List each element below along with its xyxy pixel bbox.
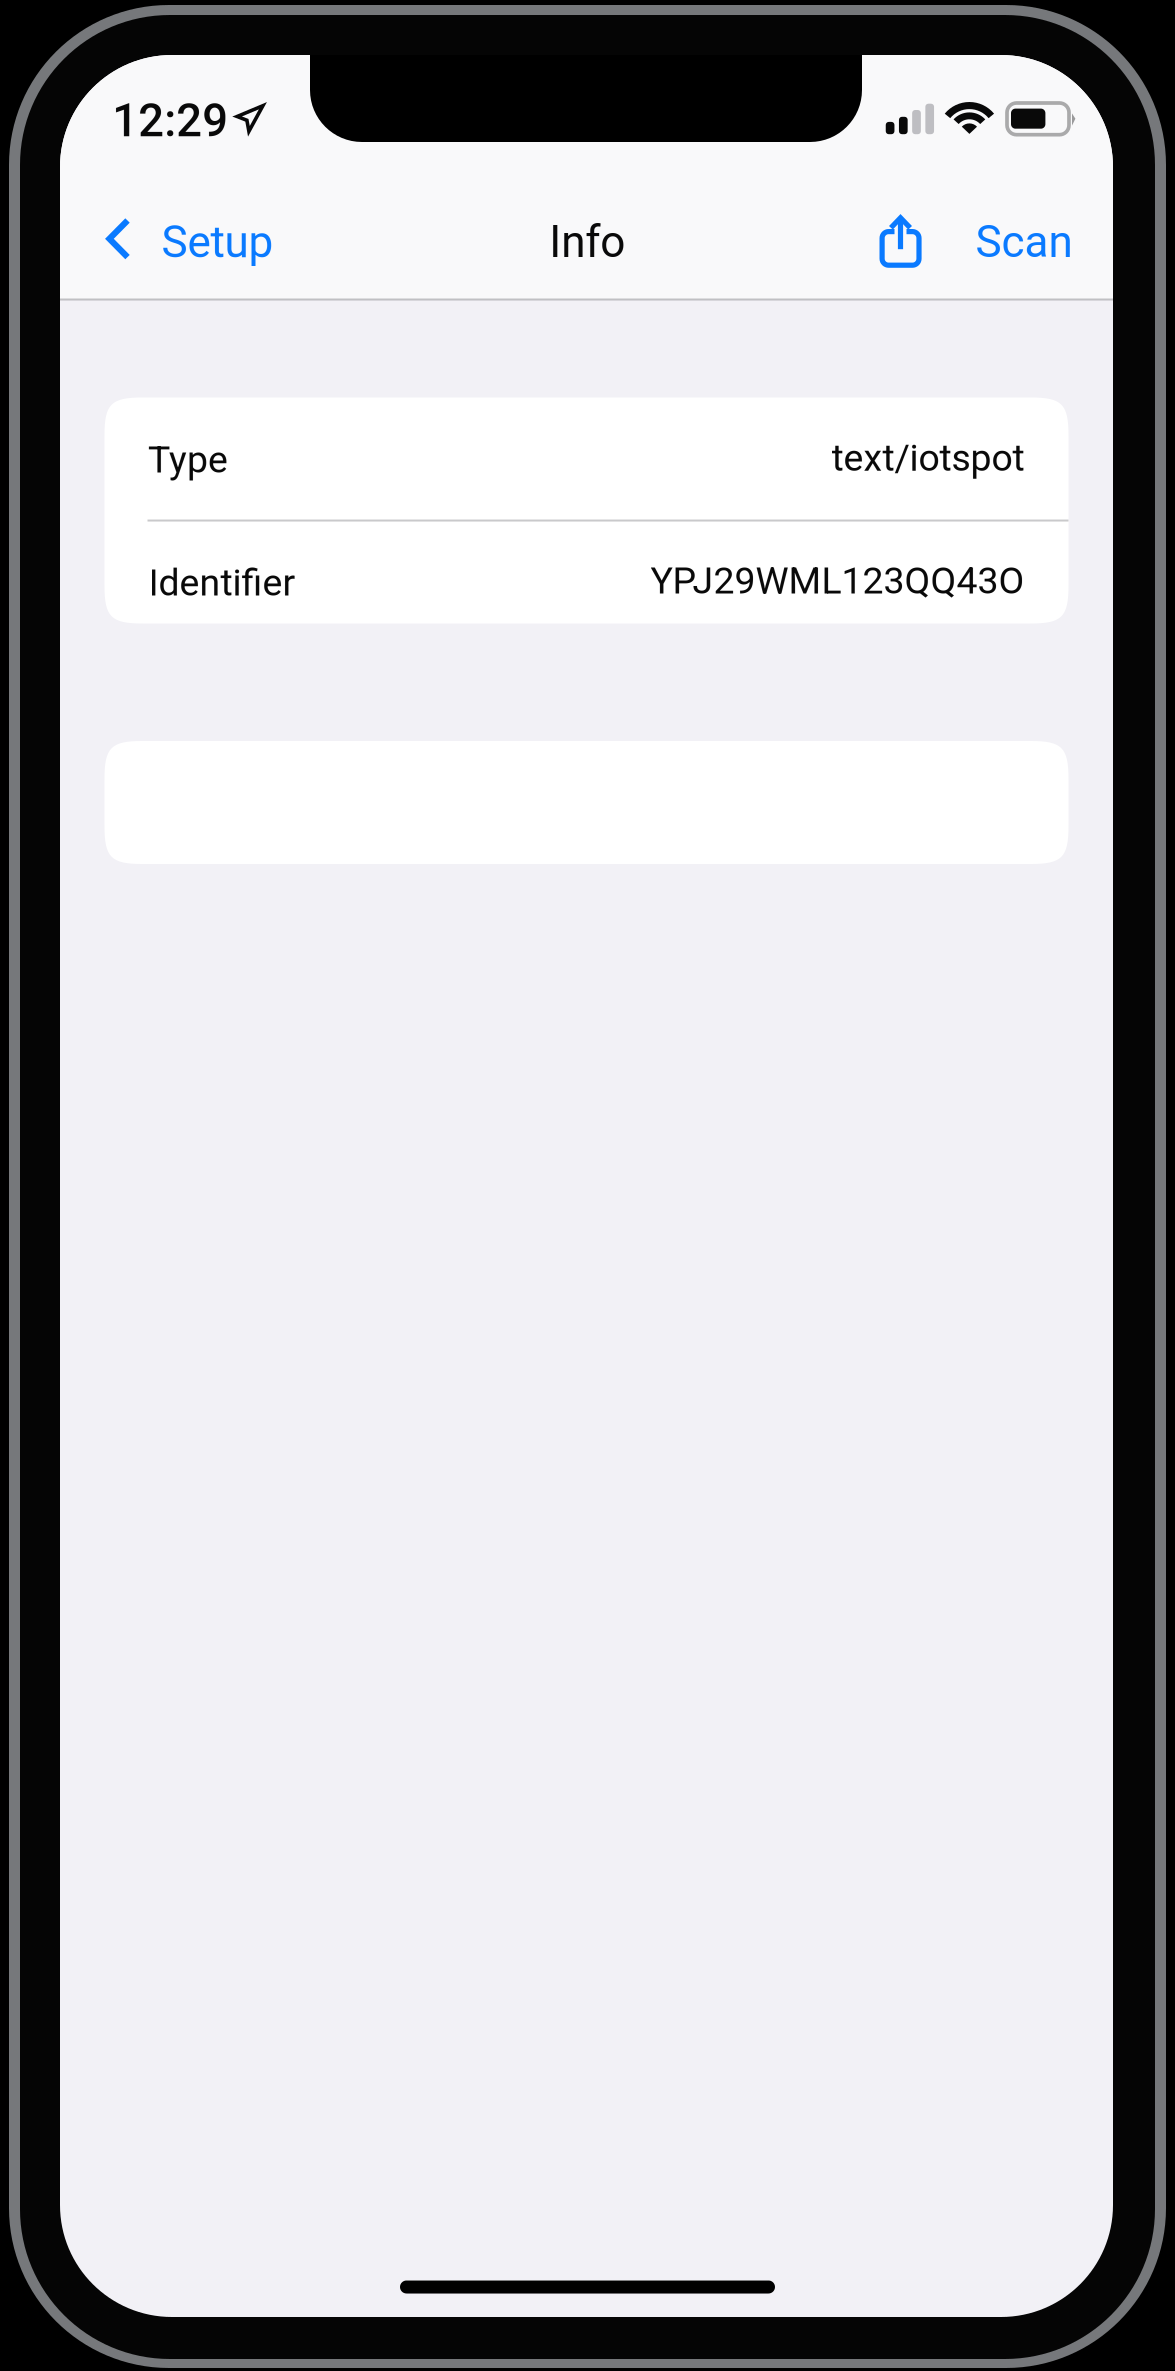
staticText: Setup (162, 216, 274, 268)
staticText: Scan (975, 216, 1072, 268)
staticText: YPJ29WML123QQ43O (650, 559, 1024, 603)
button[interactable]: Share (869, 203, 931, 280)
staticText: Identifier (148, 561, 295, 604)
staticText: Info (549, 216, 625, 268)
button[interactable]: Back (104, 214, 137, 263)
staticText: text/iotspot (831, 436, 1024, 480)
button[interactable]: Setup (160, 212, 284, 274)
staticText: 12:29 (112, 94, 228, 147)
staticText: Type (148, 438, 228, 482)
button[interactable]: Scan (965, 212, 1074, 274)
